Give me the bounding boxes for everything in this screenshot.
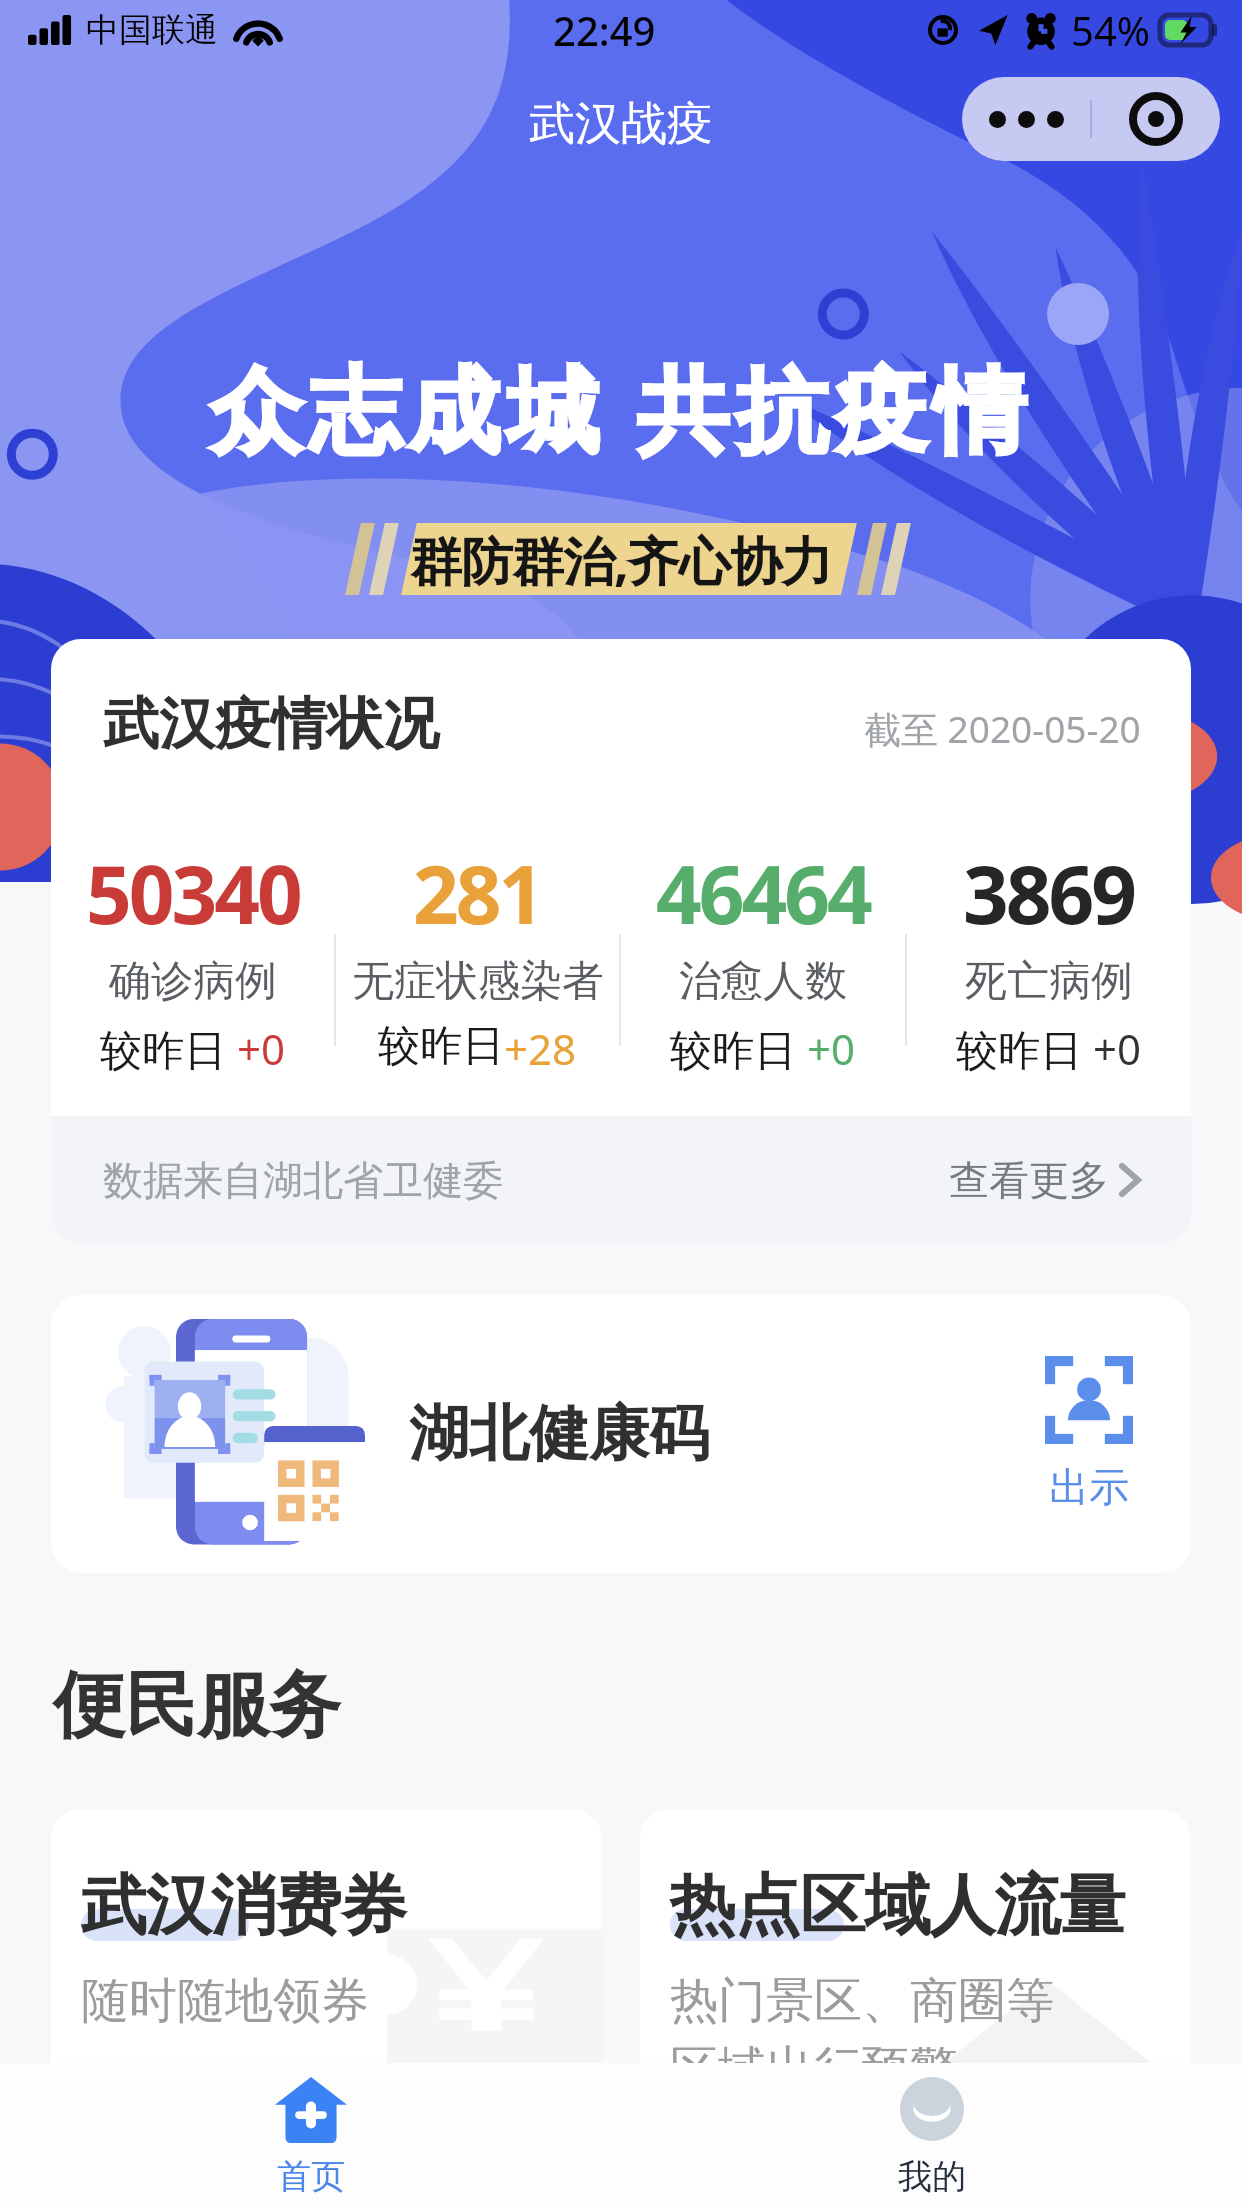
staticText: 较昨日 <box>956 1020 1093 1077</box>
staticText: 46464 <box>656 838 870 947</box>
staticText: 武汉疫情状况 <box>103 689 439 760</box>
button[interactable]: 我的 <box>621 2060 1242 2208</box>
staticText: 热门景区、商圈等 区域出行预警 <box>670 1971 1054 2099</box>
staticText: 众志成城 共抗疫情 <box>210 345 1033 471</box>
staticText: 较昨日 <box>670 1020 807 1077</box>
staticText: 数据来自湖北省卫健委 <box>103 1155 503 1205</box>
staticText: 死亡病例 <box>965 955 1133 1008</box>
staticText: 22:49 <box>553 3 656 57</box>
staticText: 随时随地领券 <box>81 1971 369 2031</box>
staticText: 50340 <box>86 838 300 947</box>
staticText: 查看更多 <box>949 1155 1109 1205</box>
staticText: 无症状感染者 <box>352 955 604 1008</box>
button[interactable]: More options <box>962 77 1090 161</box>
staticText: 3869 <box>963 838 1135 947</box>
staticText: +0 <box>1093 1020 1142 1077</box>
staticText: 热点区域人流量 <box>670 1864 1125 1947</box>
staticText: 确诊病例 <box>109 955 277 1008</box>
staticText: 54% <box>1071 3 1150 57</box>
staticText: 中国联通 <box>86 9 218 51</box>
staticText: 截至 2020-05-20 <box>864 703 1141 754</box>
button[interactable]: 热点区域人流量 <box>640 1809 1191 2208</box>
button[interactable]: 数据来自湖北省卫健委 <box>51 1116 1191 1243</box>
staticText: 治愈人数 <box>679 955 847 1008</box>
staticText: 较昨日 <box>378 1020 504 1073</box>
staticText: 湖北健康码 <box>409 1396 709 1472</box>
staticText: 武汉消费券 <box>81 1864 406 1947</box>
staticText: 我的 <box>898 2155 966 2198</box>
button[interactable]: 武汉消费券 <box>51 1809 602 2208</box>
staticText: 便民服务 <box>53 1661 341 1752</box>
button[interactable]: 湖北健康码 <box>51 1295 1191 1573</box>
button[interactable]: 首页 <box>0 2060 621 2208</box>
staticText: 出示 <box>1049 1462 1129 1512</box>
staticText: 281 <box>413 838 542 947</box>
staticText: 武汉战疫 <box>529 95 713 153</box>
staticText: 群防群治,齐心协力 <box>410 524 832 595</box>
staticText: 较昨日 <box>100 1020 237 1077</box>
staticText: 首页 <box>277 2155 345 2198</box>
staticText: +0 <box>237 1020 286 1077</box>
staticText: +28 <box>504 1020 577 1077</box>
button[interactable]: Close mini program <box>1092 77 1220 161</box>
staticText: +0 <box>807 1020 856 1077</box>
